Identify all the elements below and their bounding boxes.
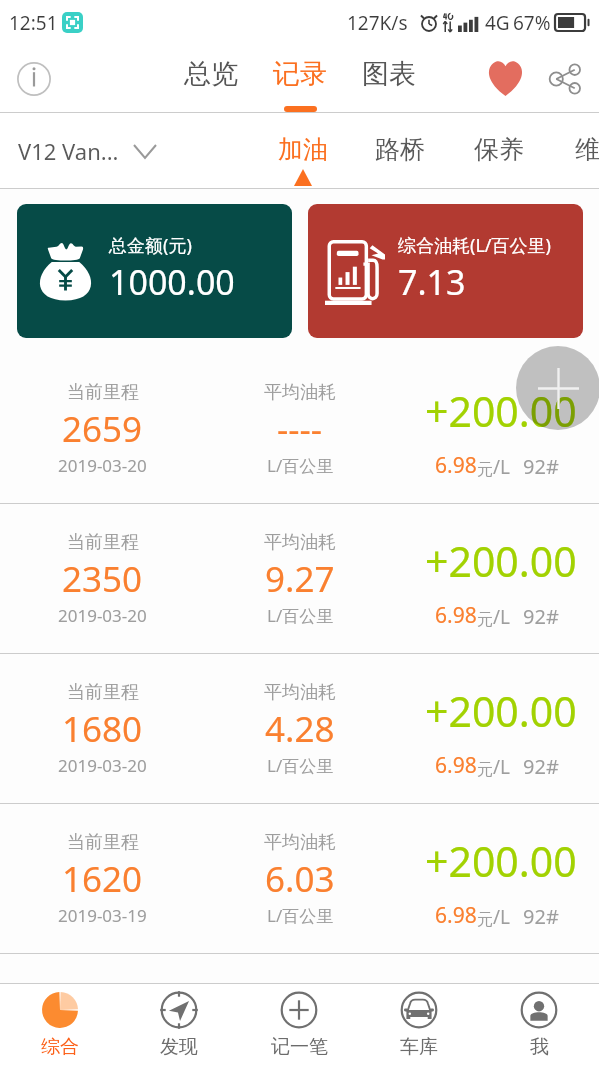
button[interactable]: 当前里程 xyxy=(0,504,599,653)
staticText: 元 xyxy=(477,910,493,930)
button[interactable]: V12 Van... xyxy=(18,136,156,166)
staticText: 综合油耗(L/百公里) xyxy=(398,233,551,258)
button[interactable]: 总金额(元) xyxy=(17,204,292,338)
staticText: L/百公里 xyxy=(267,754,334,777)
staticText: V12 Van... xyxy=(18,136,119,166)
staticText: 元 xyxy=(477,610,493,630)
staticText: 4.28 xyxy=(265,705,335,753)
staticText: 当前里程 xyxy=(67,531,139,554)
staticText: 图表 xyxy=(362,57,416,91)
staticText: 总金额(元) xyxy=(109,233,192,258)
staticText: 路桥 xyxy=(375,134,425,165)
staticText: +200.00 xyxy=(425,383,577,439)
staticText: 6.98 xyxy=(435,751,477,780)
staticText: 维 xyxy=(575,134,599,165)
staticText: 2019-03-19 xyxy=(58,904,147,927)
button[interactable]: 综合 xyxy=(0,984,119,1066)
staticText: 当前里程 xyxy=(67,681,139,704)
staticText: 2019-03-20 xyxy=(58,604,147,627)
staticText: 2019-03-20 xyxy=(58,454,147,477)
staticText: 总览 xyxy=(184,57,238,91)
staticText: 67% xyxy=(513,10,551,36)
staticText: 4G xyxy=(485,10,510,36)
staticText: 6.03 xyxy=(265,855,335,903)
staticText: 我 xyxy=(530,1035,549,1059)
button[interactable]: 记一笔 xyxy=(239,984,359,1066)
button[interactable]: 路桥 xyxy=(368,113,432,188)
staticText: 当前里程 xyxy=(67,831,139,854)
staticText: 92# xyxy=(523,903,559,930)
staticText: 92# xyxy=(523,753,559,780)
staticText: 2350 xyxy=(62,555,143,603)
staticText: 6.98 xyxy=(435,601,477,630)
button[interactable]: 图表 xyxy=(356,45,422,112)
staticText: 1620 xyxy=(62,855,143,903)
button[interactable]: 维 xyxy=(555,113,599,188)
button[interactable]: 保养 xyxy=(467,113,531,188)
staticText: /L xyxy=(493,604,511,630)
button[interactable]: Favorite xyxy=(479,45,531,112)
staticText: ---- xyxy=(277,405,323,453)
staticText: L/百公里 xyxy=(267,904,334,927)
staticText: 记录 xyxy=(273,57,327,91)
staticText: 平均油耗 xyxy=(264,531,336,554)
staticText: /L xyxy=(493,454,511,480)
staticText: 综合 xyxy=(41,1035,79,1059)
staticText: 车库 xyxy=(400,1035,438,1059)
staticText: L/百公里 xyxy=(267,604,334,627)
staticText: 6.98 xyxy=(435,451,477,480)
button[interactable]: 当前里程 xyxy=(0,354,599,503)
staticText: 2019-03-20 xyxy=(58,754,147,777)
staticText: 2659 xyxy=(62,405,143,453)
button[interactable]: 我 xyxy=(479,984,599,1066)
button[interactable]: Info xyxy=(9,45,59,112)
button[interactable]: 总览 xyxy=(178,45,244,112)
staticText: 1680 xyxy=(62,705,143,753)
staticText: 当前里程 xyxy=(67,381,139,404)
staticText: 127K/s xyxy=(347,10,408,36)
staticText: 92# xyxy=(523,603,559,630)
staticText: /L xyxy=(493,904,511,930)
staticText: 发现 xyxy=(160,1035,198,1059)
staticText: 12:51 xyxy=(9,10,58,36)
staticText: 平均油耗 xyxy=(264,681,336,704)
button[interactable]: 综合油耗(L/百公里) xyxy=(308,204,583,338)
button[interactable]: Add record xyxy=(516,346,599,430)
staticText: +200.00 xyxy=(425,833,577,889)
staticText: /L xyxy=(493,754,511,780)
button[interactable]: 加油 xyxy=(271,113,335,188)
staticText: L/百公里 xyxy=(267,454,334,477)
staticText: 保养 xyxy=(474,134,524,165)
button[interactable]: 当前里程 xyxy=(0,804,599,953)
button[interactable]: 车库 xyxy=(359,984,479,1066)
staticText: +200.00 xyxy=(425,683,577,739)
staticText: 元 xyxy=(477,760,493,780)
staticText: 平均油耗 xyxy=(264,381,336,404)
staticText: +200.00 xyxy=(425,533,577,589)
button[interactable]: 当前里程 xyxy=(0,654,599,803)
button[interactable]: 发现 xyxy=(119,984,239,1066)
staticText: 加油 xyxy=(278,134,328,165)
staticText: 1000.00 xyxy=(109,259,235,305)
staticText: 9.27 xyxy=(265,555,335,603)
staticText: 6.98 xyxy=(435,901,477,930)
button[interactable]: Share xyxy=(539,45,591,112)
staticText: 记一笔 xyxy=(271,1035,328,1059)
staticText: 7.13 xyxy=(398,259,466,305)
button[interactable]: 记录 xyxy=(267,45,333,112)
staticText: 平均油耗 xyxy=(264,831,336,854)
staticText: 元 xyxy=(477,460,493,480)
staticText: 92# xyxy=(523,453,559,480)
